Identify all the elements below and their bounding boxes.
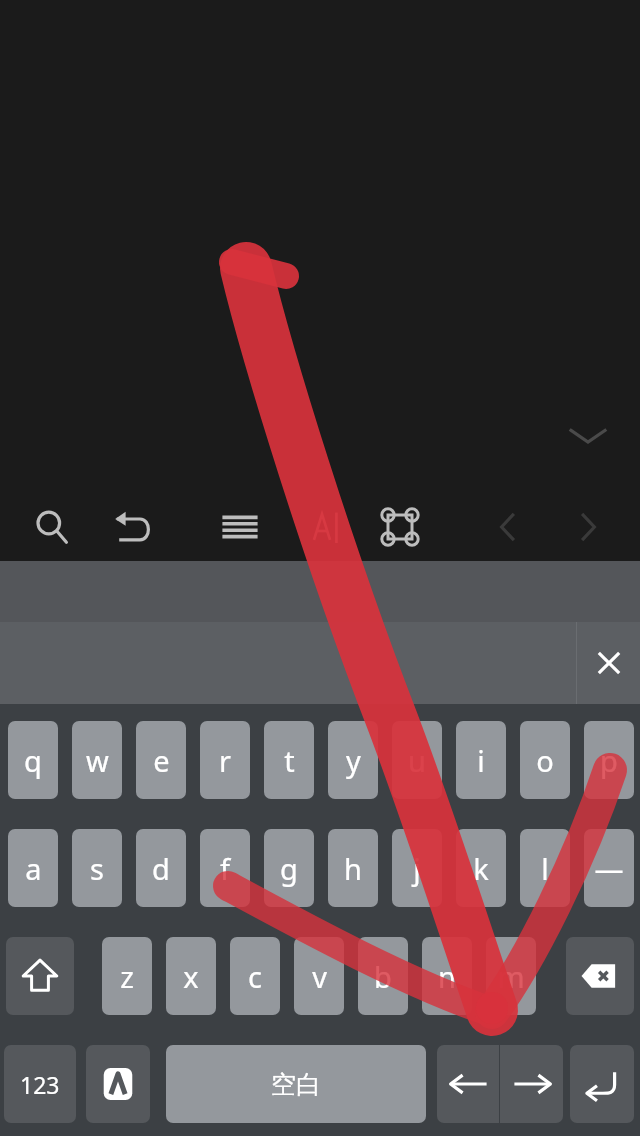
staticText: x xyxy=(183,957,199,996)
staticText: m xyxy=(497,957,525,996)
button[interactable]: v xyxy=(294,937,344,1015)
button[interactable]: 123 xyxy=(4,1045,76,1123)
button[interactable]: a xyxy=(8,829,58,907)
button[interactable]: o xyxy=(520,721,570,799)
button[interactable]: Toolbar action xyxy=(20,496,84,557)
staticText: f xyxy=(220,849,230,888)
staticText: l xyxy=(541,849,549,888)
button[interactable] xyxy=(0,622,576,704)
button[interactable]: x xyxy=(166,937,216,1015)
button[interactable]: Toolbar action xyxy=(556,496,620,557)
button[interactable]: m xyxy=(486,937,536,1015)
staticText: y xyxy=(346,741,361,780)
staticText: — xyxy=(594,849,624,888)
staticText: t xyxy=(284,741,295,780)
button[interactable]: g xyxy=(264,829,314,907)
button[interactable]: Move cursor right xyxy=(500,1045,563,1123)
staticText: 123 xyxy=(20,1069,60,1100)
staticText: a xyxy=(25,849,42,888)
button[interactable]: y xyxy=(328,721,378,799)
button[interactable]: i xyxy=(456,721,506,799)
staticText: q xyxy=(24,741,42,780)
button[interactable]: z xyxy=(102,937,152,1015)
button[interactable]: Toolbar action xyxy=(476,496,540,557)
button[interactable]: w xyxy=(72,721,122,799)
staticText: b xyxy=(374,957,392,996)
staticText: r xyxy=(219,741,231,780)
button[interactable]: k xyxy=(456,829,506,907)
button[interactable]: Toolbar action xyxy=(368,496,432,557)
button[interactable]: n xyxy=(422,937,472,1015)
button[interactable]: — xyxy=(584,829,634,907)
button[interactable]: c xyxy=(230,937,280,1015)
staticText: i xyxy=(477,741,485,780)
button[interactable]: Shift xyxy=(6,937,74,1015)
staticText: d xyxy=(152,849,170,888)
button[interactable]: l xyxy=(520,829,570,907)
button[interactable]: Change language xyxy=(86,1045,150,1123)
button[interactable]: e xyxy=(136,721,186,799)
staticText: z xyxy=(120,957,134,996)
button[interactable]: p xyxy=(584,721,634,799)
button[interactable]: Backspace xyxy=(566,937,634,1015)
staticText: s xyxy=(90,849,104,888)
button[interactable]: d xyxy=(136,829,186,907)
button[interactable]: s xyxy=(72,829,122,907)
button[interactable]: 空白 xyxy=(166,1045,426,1123)
button[interactable]: Collapse xyxy=(560,408,616,464)
button[interactable]: j xyxy=(392,829,442,907)
button[interactable]: Move cursor left xyxy=(437,1045,500,1123)
button[interactable]: Close suggestions xyxy=(577,622,640,704)
button[interactable]: t xyxy=(264,721,314,799)
staticText: 空白 xyxy=(271,1069,321,1100)
button[interactable]: q xyxy=(8,721,58,799)
staticText: j xyxy=(413,849,421,888)
staticText: k xyxy=(473,849,489,888)
staticText: w xyxy=(86,741,109,780)
staticText: e xyxy=(153,741,170,780)
staticText: n xyxy=(438,957,456,996)
button[interactable]: Toolbar action xyxy=(100,496,164,557)
button[interactable]: h xyxy=(328,829,378,907)
button[interactable]: Toolbar action xyxy=(290,496,354,557)
staticText: o xyxy=(536,741,554,780)
staticText: h xyxy=(344,849,362,888)
button[interactable]: f xyxy=(200,829,250,907)
button[interactable]: r xyxy=(200,721,250,799)
button[interactable]: u xyxy=(392,721,442,799)
button[interactable]: Return xyxy=(570,1045,634,1123)
button[interactable]: b xyxy=(358,937,408,1015)
staticText: g xyxy=(280,849,298,888)
button[interactable]: Toolbar action xyxy=(208,496,272,557)
staticText: v xyxy=(312,957,327,996)
staticText: c xyxy=(248,957,262,996)
staticText: p xyxy=(600,741,618,780)
